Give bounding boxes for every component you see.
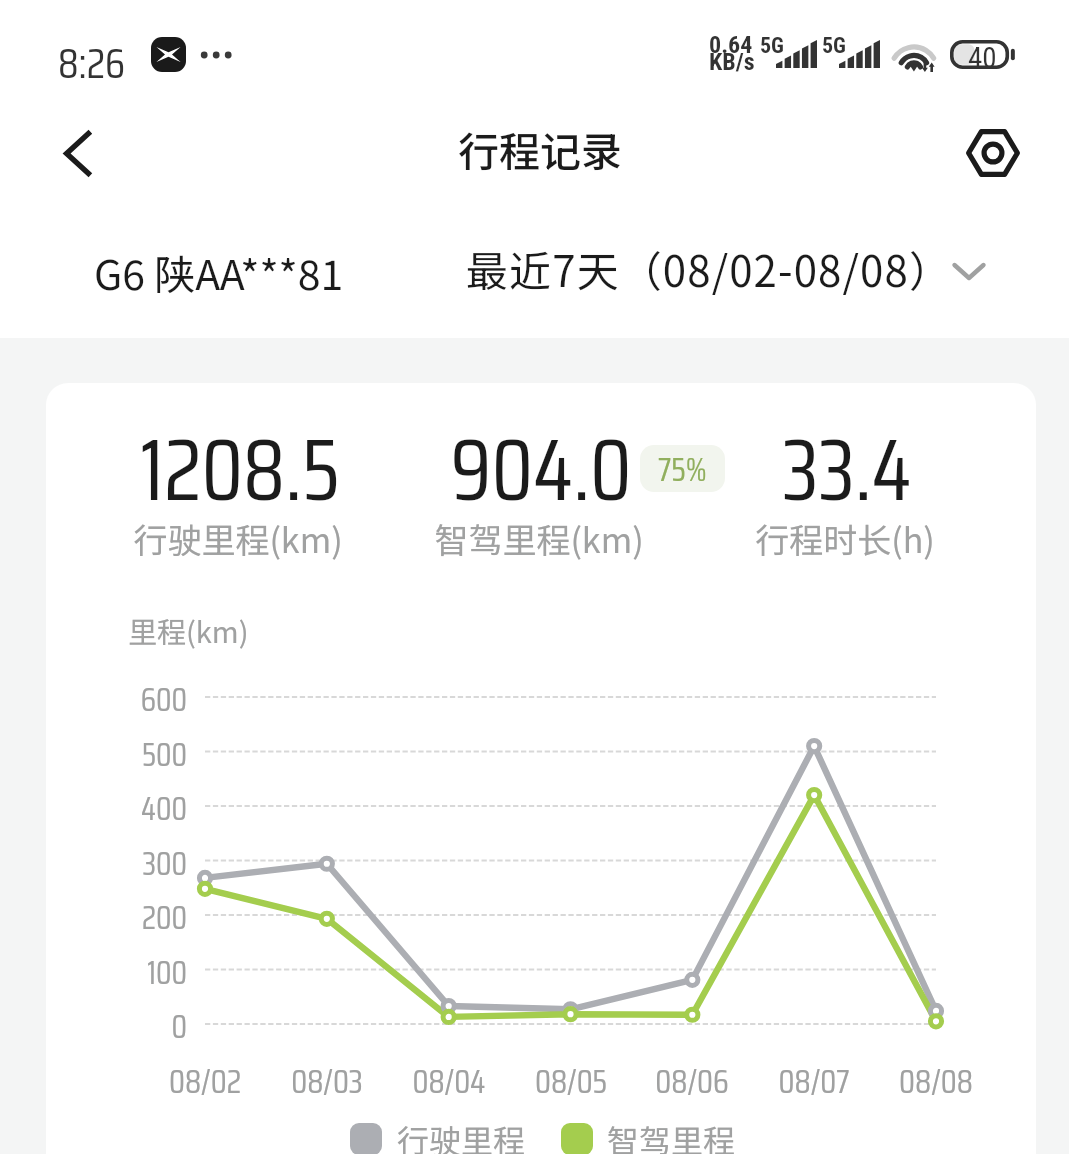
staticText: 行程记录 (458, 119, 622, 178)
staticText: 200 (66, 893, 187, 943)
staticText: 33.4 (782, 402, 912, 537)
staticText: 100 (66, 948, 187, 998)
button[interactable]: Settings (958, 118, 1028, 188)
staticText: 08/06 (622, 1056, 762, 1108)
staticText: 8:26 (58, 30, 126, 96)
staticText: 1208.5 (140, 402, 340, 537)
staticText: 75% (658, 445, 707, 491)
staticText: 5G (760, 33, 784, 59)
staticText: 里程(km) (128, 609, 249, 651)
staticText: 300 (66, 839, 187, 889)
staticText: 08/04 (379, 1056, 519, 1108)
staticText: 0 (66, 1002, 187, 1052)
staticText: 最近7天（08/02-08/08） (466, 238, 952, 299)
staticText: 5G (822, 33, 846, 59)
staticText: 智驾里程(km) (434, 514, 644, 563)
staticText: 行驶里程(km) (133, 514, 343, 563)
staticText: 行驶里程 (397, 1116, 526, 1154)
staticText: 行程时长(h) (755, 514, 935, 563)
staticText: 08/07 (744, 1056, 884, 1108)
staticText: 智驾里程 (607, 1116, 736, 1154)
staticText: KB/s (709, 48, 755, 76)
staticText: 40 (968, 41, 997, 70)
staticText: 08/02 (135, 1056, 275, 1108)
staticText: G6 陕AA***81 (94, 242, 344, 301)
staticText: 500 (66, 730, 187, 780)
staticText: 400 (66, 784, 187, 834)
staticText: 904.0 (450, 402, 632, 537)
button[interactable]: G6 陕AA***81 (94, 242, 344, 301)
staticText: 08/05 (501, 1056, 641, 1108)
staticText: 08/03 (257, 1056, 397, 1108)
staticText: 08/08 (866, 1056, 1006, 1108)
button[interactable]: 最近7天（08/02-08/08） (466, 241, 986, 302)
staticText: 0.64 (709, 31, 753, 59)
staticText: 600 (66, 675, 187, 725)
button[interactable]: Back (42, 118, 112, 188)
